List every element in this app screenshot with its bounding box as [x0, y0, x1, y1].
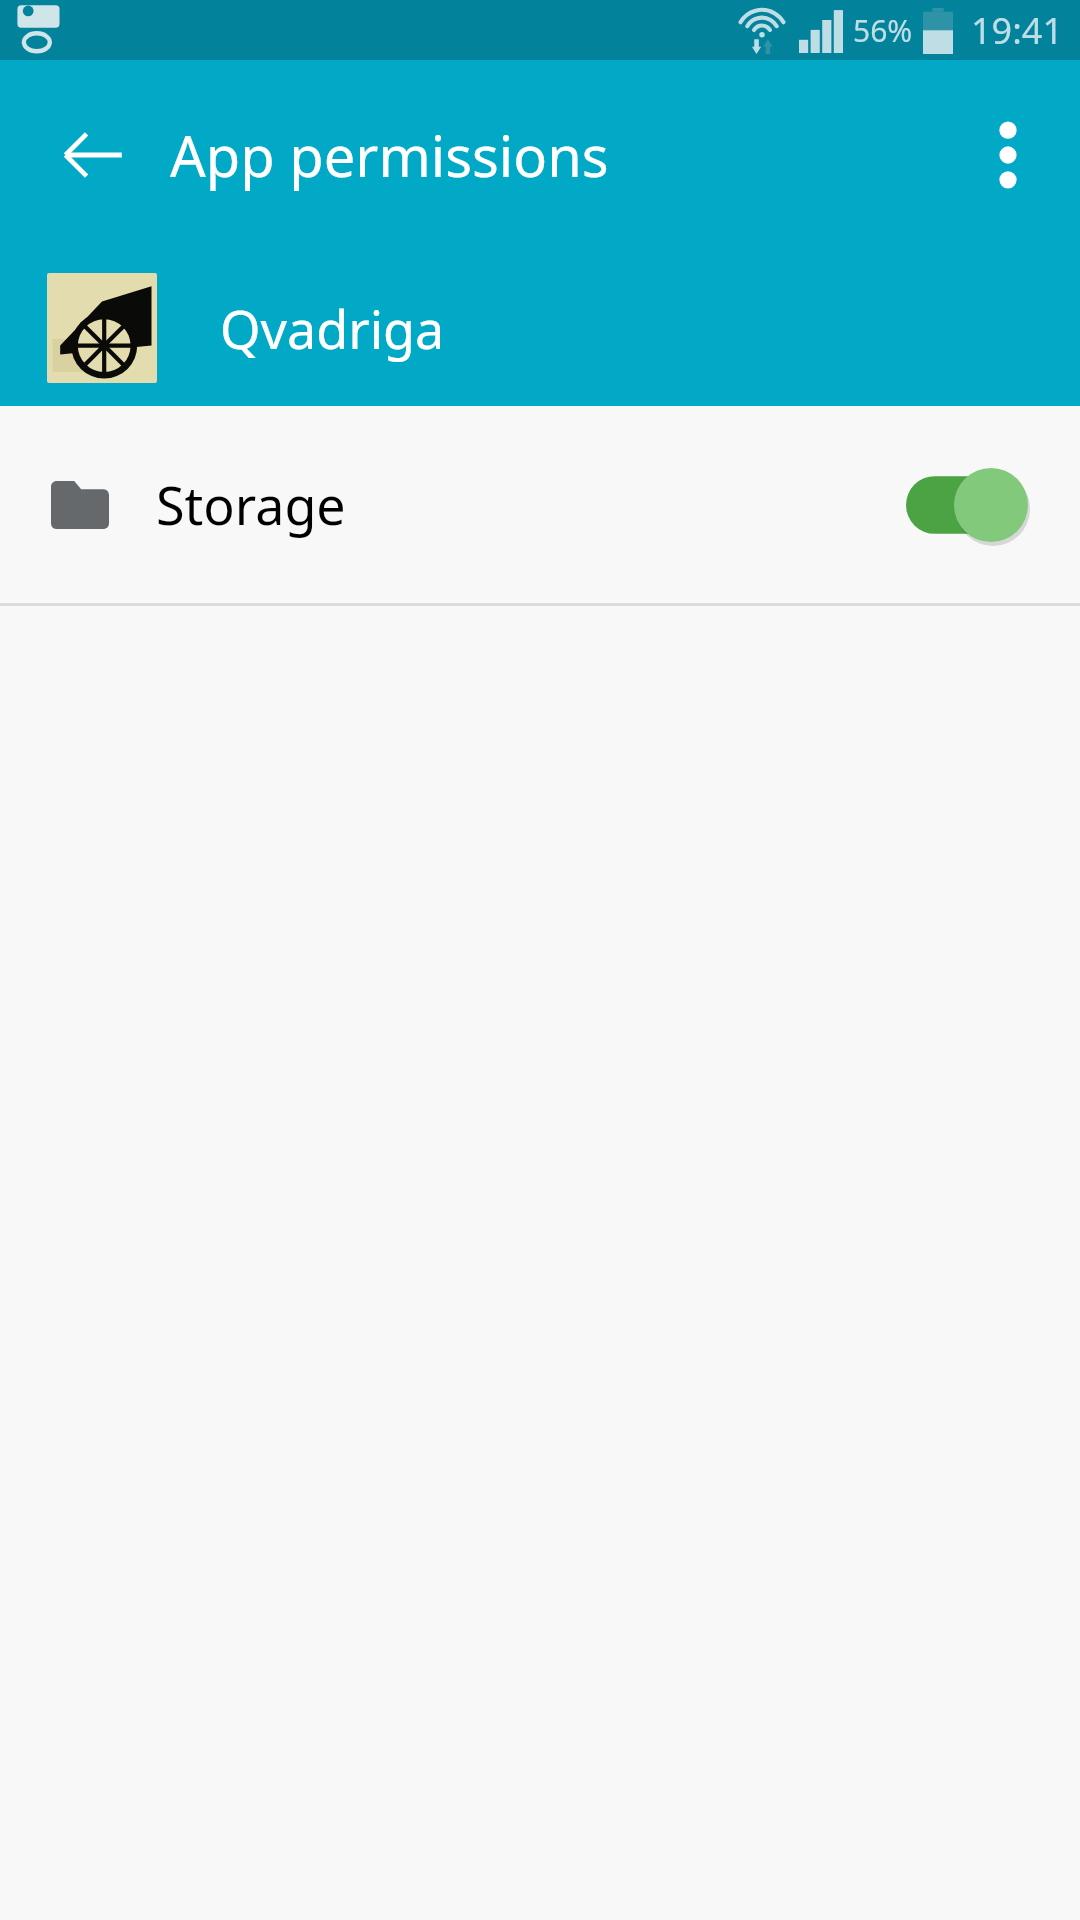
staticText: Qvadriga [220, 293, 445, 364]
staticText: 19:41 [971, 6, 1064, 55]
button[interactable]: Storage permission toggle, on [892, 450, 1042, 560]
staticText: App permissions [170, 117, 609, 193]
button[interactable]: Navigate up [33, 95, 153, 215]
button[interactable]: More options [948, 95, 1068, 215]
staticText: Storage [156, 469, 346, 540]
button[interactable]: Storage [0, 406, 1080, 603]
staticText: 56% [853, 10, 913, 51]
